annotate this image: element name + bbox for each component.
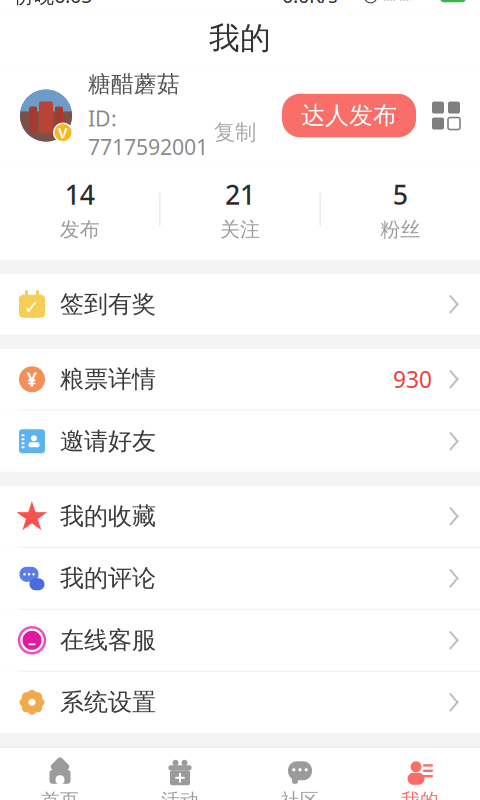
button[interactable]: 5 xyxy=(321,177,480,242)
staticText: 0.0K/s xyxy=(282,0,338,9)
staticText: ✓ xyxy=(24,297,40,318)
button[interactable]: 系统设置 xyxy=(0,672,480,733)
staticText: ID:7717592001 xyxy=(88,104,208,161)
button[interactable]: 邀请好友 xyxy=(0,411,480,472)
staticText: 复制 xyxy=(214,119,256,146)
button[interactable]: 复制 xyxy=(214,119,256,146)
staticText: ★ xyxy=(14,494,50,539)
button[interactable]: 14 xyxy=(0,177,159,242)
button[interactable]: 21 xyxy=(160,177,320,242)
staticText: 我的评论 xyxy=(60,563,156,593)
staticText: 粉丝 xyxy=(380,217,420,242)
staticText: 签到有奖 xyxy=(60,289,156,319)
staticText: 930 xyxy=(393,364,432,394)
staticText: 100 xyxy=(442,0,463,3)
staticText: 糖醋蘑菇 xyxy=(88,70,180,98)
button[interactable]: ¥ xyxy=(0,349,480,411)
staticText: 达人发布 xyxy=(301,101,397,130)
button[interactable]: 社区 xyxy=(240,754,360,800)
button[interactable]: 在线客服 xyxy=(0,610,480,672)
staticText: ¥ xyxy=(26,367,37,392)
button[interactable]: ✓ xyxy=(0,274,480,335)
button[interactable]: 达人发布 xyxy=(282,94,416,137)
staticText: 关注 xyxy=(220,217,260,242)
staticText: V xyxy=(58,123,68,142)
staticText: 首页 xyxy=(41,789,79,800)
staticText: 在线客服 xyxy=(60,625,156,655)
staticText: 发布 xyxy=(60,217,100,242)
staticText: 21 xyxy=(225,177,255,212)
staticText: 我的 xyxy=(209,19,271,57)
staticText: 邀请好友 xyxy=(60,426,156,456)
staticText: 5 xyxy=(393,177,408,212)
staticText: 活动 xyxy=(161,789,199,800)
button[interactable]: 首页 xyxy=(0,754,120,800)
button[interactable]: 我的 xyxy=(360,754,480,800)
staticText: 我的收藏 xyxy=(60,501,156,531)
button[interactable]: 我的评论 xyxy=(0,548,480,610)
button[interactable]: 扫一扫 xyxy=(416,101,462,129)
staticText: 粮票详情 xyxy=(60,364,156,394)
staticText: ◎ xyxy=(363,0,378,5)
button[interactable]: ★ xyxy=(0,486,480,548)
button[interactable]: 活动 xyxy=(120,754,240,800)
staticText: 社区 xyxy=(281,789,319,800)
staticText: 系统设置 xyxy=(60,687,156,717)
staticText: 傍晚6:05 xyxy=(14,0,92,9)
staticText: 我的 xyxy=(401,789,439,800)
staticText: 14 xyxy=(65,177,95,212)
